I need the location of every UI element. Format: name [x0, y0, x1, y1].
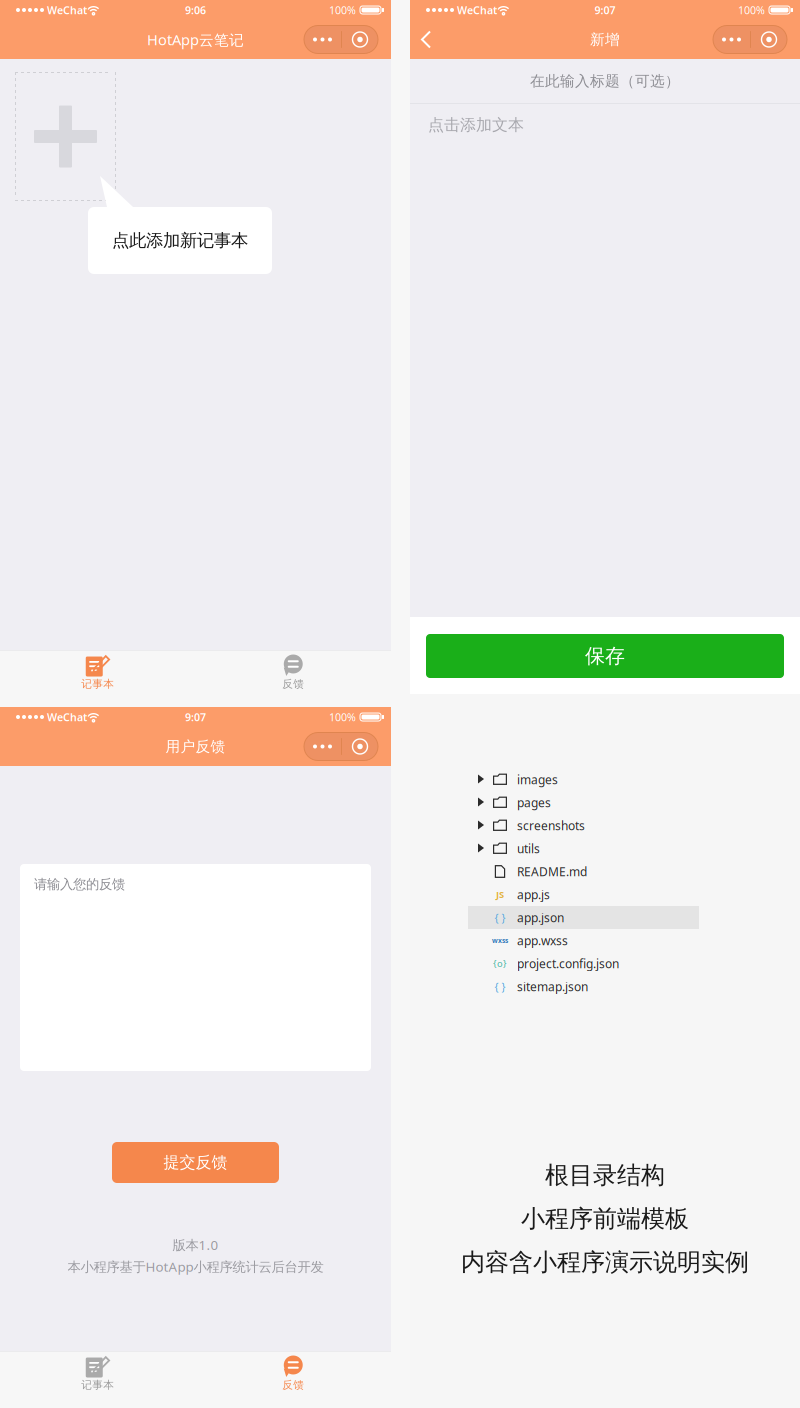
button[interactable]: More options	[713, 25, 787, 53]
button[interactable]: More options	[304, 25, 378, 53]
staticText: utils	[517, 840, 540, 856]
staticText: 记事本	[81, 677, 114, 691]
staticText: HotApp云笔记	[147, 30, 244, 49]
staticText: README.md	[517, 863, 587, 879]
staticText: 保存	[585, 644, 625, 668]
staticText: { }	[494, 910, 505, 925]
staticText: 请输入您的反馈	[34, 876, 125, 892]
staticText: 9:07	[594, 3, 615, 17]
button[interactable]: 记事本	[0, 650, 195, 691]
staticText: 版本1.0	[172, 1236, 218, 1254]
staticText: 点此添加新记事本	[112, 230, 248, 251]
button[interactable]: Add notebook	[15, 72, 116, 201]
staticText: 反馈	[282, 677, 304, 691]
staticText: sitemap.json	[517, 978, 588, 994]
staticText: 小程序前端模板	[521, 1204, 689, 1233]
staticText: 反馈	[282, 1378, 304, 1392]
staticText: 100%	[738, 3, 765, 17]
button[interactable]: 提交反馈	[112, 1142, 279, 1183]
staticText: 9:07	[185, 710, 206, 724]
staticText: app.js	[517, 886, 550, 902]
staticText: app.json	[517, 909, 564, 925]
staticText: WeChat	[47, 710, 87, 724]
button[interactable]: 反馈	[195, 1351, 391, 1392]
staticText: 用户反馈	[165, 737, 225, 755]
staticText: 9:06	[185, 3, 206, 17]
staticText: 提交反馈	[163, 1153, 227, 1172]
staticText: JS	[496, 888, 504, 901]
staticText: pages	[517, 794, 551, 810]
staticText: 内容含小程序演示说明实例	[461, 1247, 749, 1277]
staticText: 点击添加文本	[428, 115, 524, 135]
staticText: WeChat	[47, 3, 87, 17]
staticText: 新增	[590, 30, 620, 48]
staticText: 100%	[329, 3, 356, 17]
button[interactable]: 记事本	[0, 1351, 195, 1392]
staticText: 100%	[329, 710, 356, 724]
button[interactable]: Back	[410, 20, 443, 59]
staticText: screenshots	[517, 817, 585, 833]
staticText: project.config.json	[517, 955, 619, 971]
staticText: 在此输入标题（可选）	[530, 72, 680, 90]
button[interactable]: 保存	[426, 634, 784, 678]
staticText: images	[517, 771, 558, 787]
staticText: WeChat	[457, 3, 497, 17]
staticText: app.wxss	[517, 932, 568, 948]
staticText: { }	[494, 979, 505, 994]
button[interactable]: 反馈	[195, 650, 391, 691]
staticText: 本小程序基于HotApp小程序统计云后台开发	[67, 1258, 323, 1275]
staticText: 根目录结构	[545, 1161, 665, 1190]
button[interactable]: More options	[304, 732, 378, 760]
staticText: wxss	[492, 936, 508, 945]
staticText: {o}	[493, 957, 507, 970]
staticText: 记事本	[81, 1378, 114, 1392]
